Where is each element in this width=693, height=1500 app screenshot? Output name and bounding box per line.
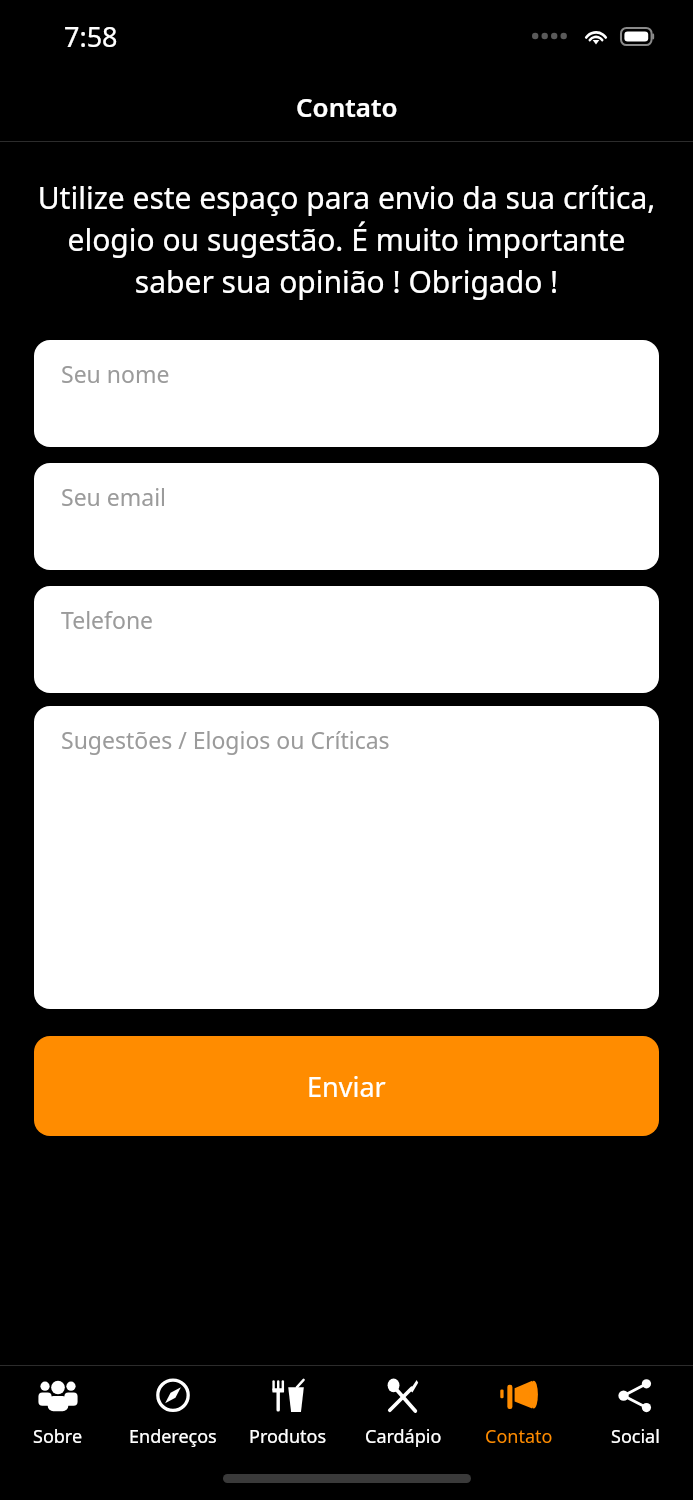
staticText: Endereços <box>129 1424 217 1449</box>
staticText: Sugestões / Elogios ou Críticas <box>61 724 390 755</box>
staticText: Utilize este espaço para envio da sua cr… <box>30 177 663 302</box>
staticText: Contato <box>296 89 398 124</box>
staticText: Social <box>611 1424 660 1449</box>
staticText: Telefone <box>61 604 154 635</box>
staticText: Sobre <box>33 1424 83 1449</box>
button[interactable]: Seu nome <box>34 340 659 447</box>
button[interactable]: Sugestões / Elogios ou Críticas <box>34 706 659 1009</box>
button[interactable]: Enviar <box>34 1036 659 1136</box>
button[interactable]: Sobre <box>0 1366 115 1456</box>
staticText: Seu nome <box>61 358 170 389</box>
staticText: Contato <box>485 1424 553 1449</box>
staticText: Enviar <box>307 1068 386 1105</box>
button[interactable]: Seu email <box>34 463 659 570</box>
button[interactable]: Cardápio <box>345 1366 461 1456</box>
button[interactable]: Telefone <box>34 586 659 693</box>
staticText: 7:58 <box>64 18 118 55</box>
button[interactable]: Contato <box>461 1366 577 1456</box>
button[interactable]: Endereços <box>115 1366 230 1456</box>
button[interactable]: Produtos <box>230 1366 345 1456</box>
staticText: Seu email <box>61 481 167 512</box>
button[interactable]: Social <box>577 1366 693 1456</box>
staticText: Produtos <box>249 1424 327 1449</box>
staticText: Cardápio <box>365 1424 442 1449</box>
